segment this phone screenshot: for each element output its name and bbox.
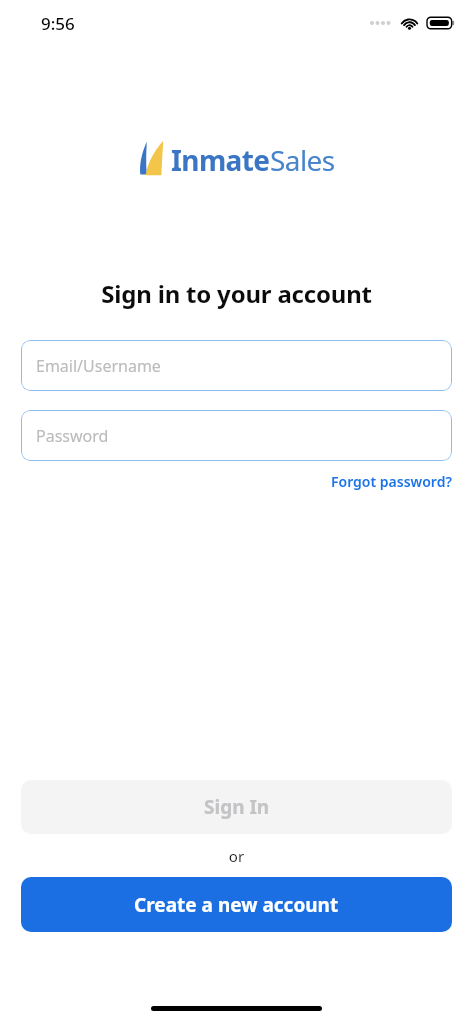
staticText: Inmate <box>171 141 270 179</box>
staticText: Sign in to your account <box>0 277 473 310</box>
button[interactable]: Password <box>21 410 452 461</box>
button[interactable]: Create a new account <box>21 877 452 932</box>
staticText: Email/Username <box>36 355 161 377</box>
staticText: 9:56 <box>41 12 75 35</box>
staticText: Password <box>36 425 109 447</box>
other: InmateSales logo <box>139 140 165 180</box>
button[interactable]: Email/Username <box>21 340 452 391</box>
button[interactable]: Sign In <box>21 780 452 834</box>
staticText: or <box>0 846 473 866</box>
staticText: Forgot password? <box>331 472 452 491</box>
staticText: Sign In <box>204 794 270 820</box>
button[interactable]: Forgot password? <box>327 468 456 495</box>
staticText: Sales <box>270 141 335 179</box>
staticText: Create a new account <box>134 892 339 918</box>
